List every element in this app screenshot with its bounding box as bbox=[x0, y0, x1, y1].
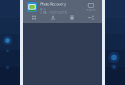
button[interactable]: Backup bbox=[43, 15, 62, 21]
staticText: restore bbox=[86, 8, 96, 11]
button[interactable]: Open bbox=[24, 15, 43, 21]
button[interactable]: Share bbox=[81, 15, 100, 21]
staticText: 3 Mb 10/31/2018 bbox=[40, 11, 67, 15]
button[interactable]: Delete bbox=[62, 15, 81, 21]
staticText: Photo Recovery bbox=[40, 1, 66, 7]
staticText: v2.0 bbox=[40, 7, 46, 11]
button[interactable]: Restore bbox=[86, 0, 102, 11]
